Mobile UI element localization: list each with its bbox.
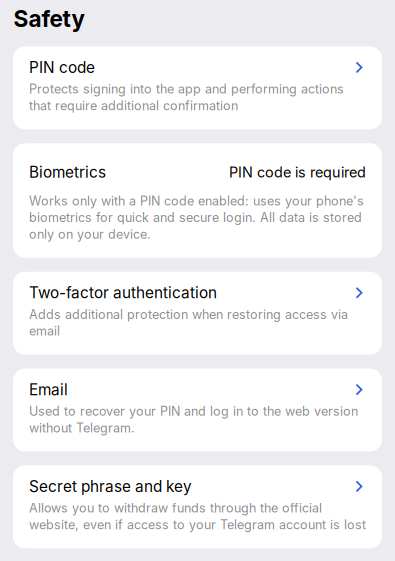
button[interactable]: PIN code [13, 46, 382, 129]
button[interactable]: Secret phrase and key [13, 465, 382, 548]
staticText: PIN code is required [229, 163, 366, 181]
staticText: Safety [13, 5, 84, 32]
staticText: Email [29, 380, 68, 399]
button[interactable]: Biometrics [13, 143, 382, 258]
button[interactable]: Email [13, 369, 382, 451]
staticText: Protects signing into the app and perfor… [29, 81, 344, 113]
staticText: Biometrics [29, 163, 106, 182]
staticText: Two-factor authentication [29, 283, 217, 302]
button[interactable]: Two-factor authentication [13, 272, 382, 355]
staticText: Adds additional protection when restorin… [29, 307, 348, 339]
staticText: PIN code [29, 58, 95, 77]
staticText: Allows you to withdraw funds through the… [29, 500, 366, 532]
staticText: Secret phrase and key [29, 477, 192, 496]
staticText: Used to recover your PIN and log in to t… [29, 404, 358, 435]
staticText: Works only with a PIN code enabled: uses… [29, 193, 364, 242]
